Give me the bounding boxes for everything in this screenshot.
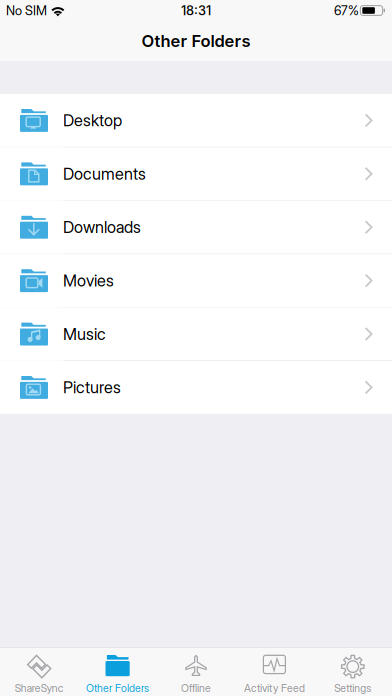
button[interactable]: Desktop — [0, 94, 392, 147]
button[interactable]: Other Folders — [78, 648, 157, 696]
staticText: 18:31 — [181, 3, 211, 18]
staticText: Activity Feed — [244, 682, 305, 694]
staticText: Other Folders — [141, 31, 250, 51]
staticText: ShareSync — [15, 682, 64, 694]
staticText: Pictures — [63, 378, 121, 397]
staticText: Documents — [63, 164, 146, 184]
button[interactable]: Movies — [0, 254, 392, 307]
staticText: No SIM — [6, 3, 47, 18]
button[interactable]: Offline — [157, 648, 235, 696]
button[interactable]: Documents — [0, 147, 392, 200]
staticText: Music — [63, 324, 106, 344]
button[interactable]: Settings — [314, 648, 392, 696]
button[interactable]: Downloads — [0, 201, 392, 254]
staticText: Offline — [181, 682, 211, 694]
button[interactable]: ShareSync — [0, 648, 78, 696]
staticText: Other Folders — [86, 682, 149, 694]
button[interactable]: Pictures — [0, 361, 392, 414]
staticText: 67% — [334, 3, 359, 18]
button[interactable]: Activity Feed — [235, 648, 314, 696]
staticText: Downloads — [63, 217, 141, 237]
button[interactable]: Music — [0, 308, 392, 360]
staticText: Desktop — [63, 111, 122, 130]
staticText: Movies — [63, 271, 114, 290]
staticText: Settings — [334, 682, 371, 694]
